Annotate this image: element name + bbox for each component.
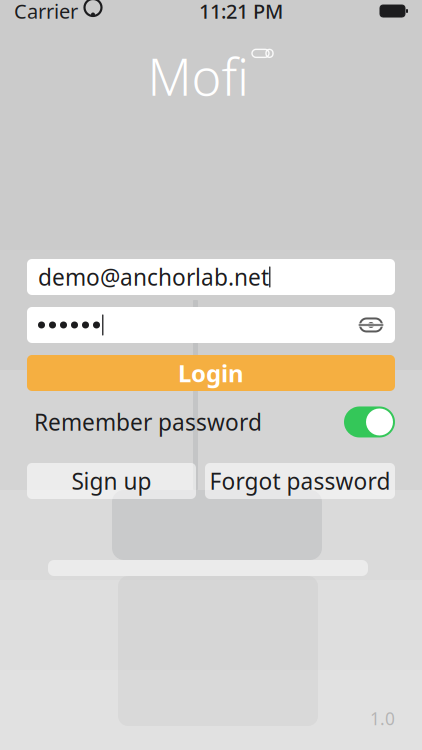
staticText: Forgot password (209, 466, 390, 496)
staticText: demo@anchorlab.net (38, 262, 269, 292)
staticText: Sign up (71, 466, 151, 496)
button[interactable]: Login (27, 355, 395, 391)
staticText: Carrier (14, 0, 78, 24)
button[interactable]: Password (27, 307, 395, 343)
button[interactable]: demo@anchorlab.net (27, 259, 395, 295)
staticText: Remember password (34, 407, 262, 437)
staticText: 11:21 PM (199, 0, 283, 24)
staticText: 1.0 (370, 707, 395, 730)
button[interactable]: Sign up (27, 463, 196, 499)
staticText: Mofi (147, 42, 248, 110)
button[interactable]: Remember password (27, 405, 395, 439)
staticText: Login (178, 357, 244, 389)
button[interactable]: Forgot password (205, 463, 395, 499)
